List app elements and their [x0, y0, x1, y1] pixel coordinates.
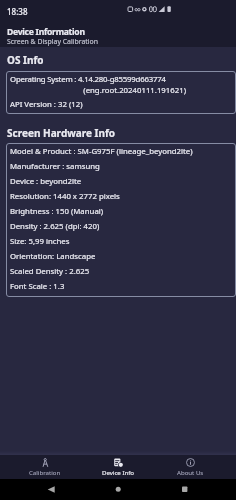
staticText: 18:38 — [7, 6, 28, 17]
staticText: Density : 2.625 (dpi: 420) — [10, 221, 100, 232]
staticText: Device Information — [7, 26, 85, 38]
staticText: Device : beyond2lte — [10, 176, 82, 187]
staticText: OS Info — [7, 53, 44, 67]
staticText: Resolution: 1440 x 2772 pixels — [10, 191, 120, 202]
staticText: Screen & Display Calibration — [7, 37, 99, 46]
button[interactable]: Device Info — [81, 455, 154, 479]
staticText: Device Info — [102, 468, 134, 476]
other: Device Info — [113, 458, 123, 467]
staticText: Screen Hardware Info — [7, 126, 116, 140]
staticText: API Version : 32 (12) — [10, 99, 83, 110]
staticText: (eng.root.20240111.191621) — [10, 85, 186, 96]
button[interactable]: About Us — [154, 455, 227, 479]
staticText: Orientation: Landscape — [10, 251, 96, 262]
staticText: Operating System : 4.14.280-g85599d66377… — [10, 74, 166, 85]
staticText: Manufacturer : samsung — [10, 161, 100, 172]
staticText: About Us — [177, 468, 204, 476]
button[interactable]: Calibration — [9, 455, 81, 479]
staticText: Size: 5,99 inches — [10, 236, 70, 247]
other: System navigation — [0, 479, 236, 500]
staticText: Model & Product : SM-G975F (lineage_beyo… — [10, 146, 193, 157]
staticText: Calibration — [29, 468, 61, 476]
other: About Us — [186, 458, 195, 467]
staticText: Brightness : 150 (Manual) — [10, 206, 104, 217]
staticText: Scaled Density : 2.625 — [10, 266, 90, 277]
staticText: Font Scale : 1.3 — [10, 281, 65, 292]
other: Calibration — [41, 458, 50, 467]
